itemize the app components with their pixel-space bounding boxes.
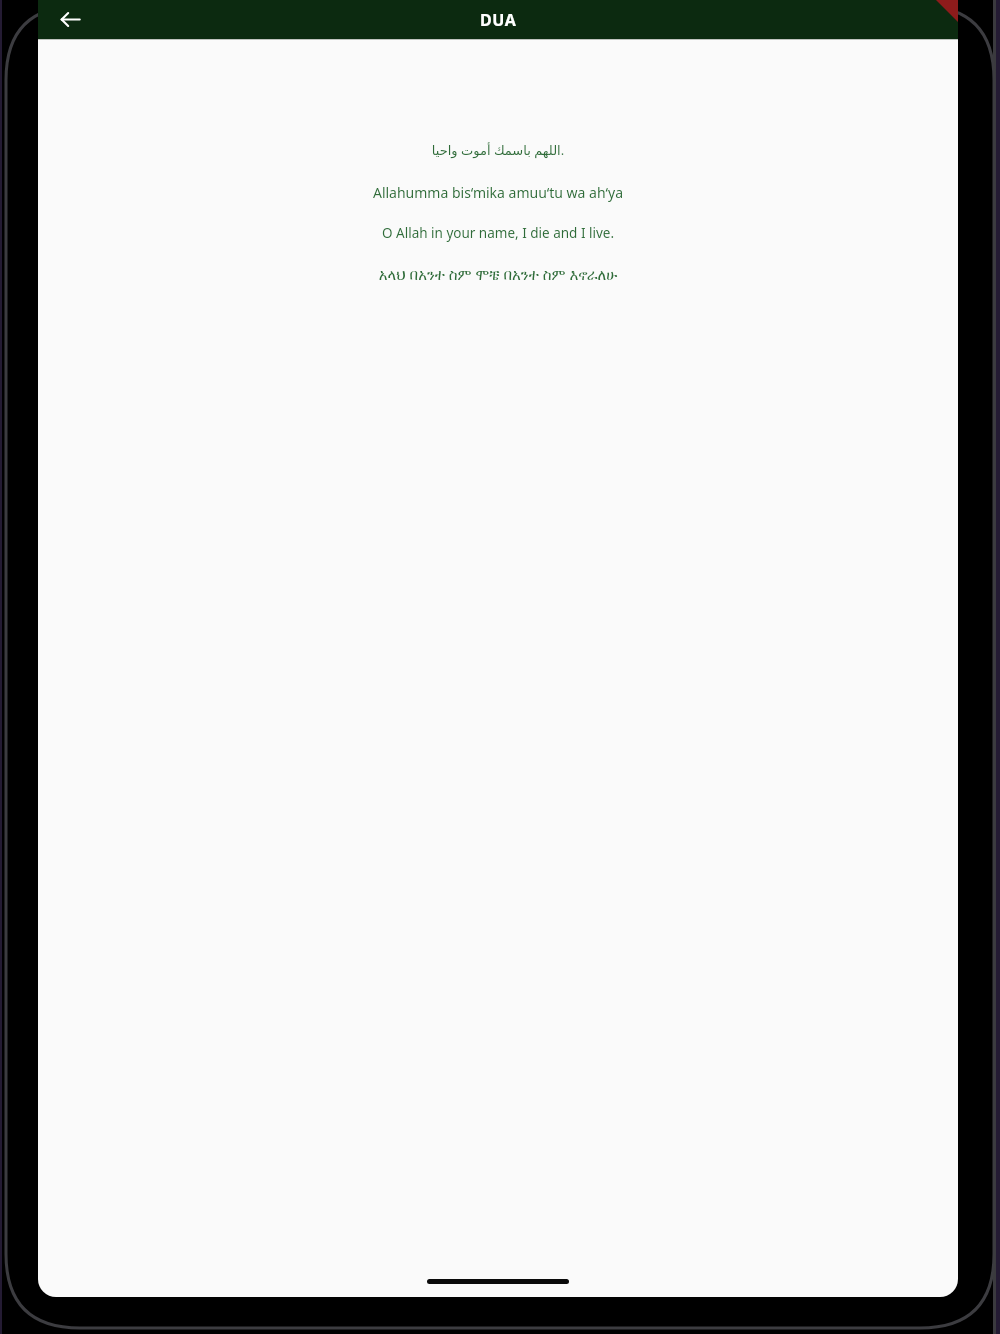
staticText: አላህ በአንተ ስም ሞቼ በአንተ ስም እኖራለሁ: [62, 264, 934, 284]
button[interactable]: Back: [48, 0, 92, 39]
staticText: اللهم باسمك أموت واحيا.: [62, 141, 934, 159]
staticText: DUA: [480, 9, 517, 31]
staticText: Allahumma bis‘mika amuu‘tu wa ah‘ya: [62, 183, 934, 202]
staticText: O Allah in your name, I die and I live.: [62, 224, 934, 242]
